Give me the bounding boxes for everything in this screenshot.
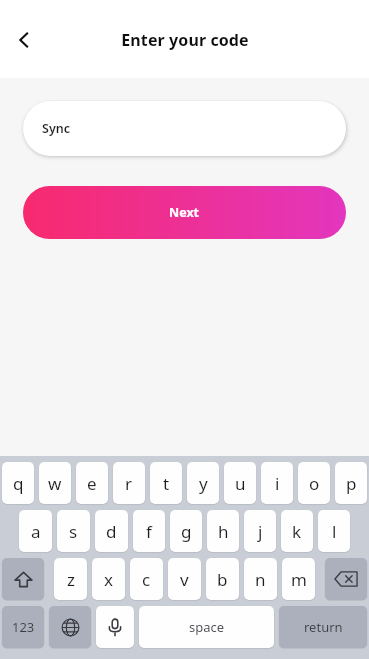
- staticText: h: [218, 520, 229, 543]
- button[interactable]: Shift: [2, 558, 44, 600]
- staticText: u: [235, 472, 246, 495]
- button[interactable]: e: [76, 462, 108, 504]
- button[interactable]: u: [224, 462, 256, 504]
- button[interactable]: Sync: [23, 101, 346, 156]
- staticText: Next: [169, 204, 200, 221]
- staticText: d: [106, 520, 117, 543]
- staticText: t: [163, 472, 170, 495]
- button[interactable]: m: [282, 558, 315, 600]
- button[interactable]: r: [113, 462, 145, 504]
- button[interactable]: b: [206, 558, 239, 600]
- button[interactable]: Voice input: [96, 606, 134, 648]
- button[interactable]: j: [244, 510, 276, 552]
- staticText: c: [142, 568, 151, 591]
- button[interactable]: t: [150, 462, 182, 504]
- button[interactable]: f: [133, 510, 165, 552]
- staticText: l: [332, 520, 337, 543]
- button[interactable]: i: [261, 462, 293, 504]
- button[interactable]: space: [139, 606, 274, 648]
- staticText: k: [292, 520, 302, 543]
- button[interactable]: Next: [23, 186, 346, 239]
- staticText: s: [69, 520, 78, 543]
- staticText: v: [180, 568, 189, 591]
- button[interactable]: y: [187, 462, 219, 504]
- staticText: Enter your code: [121, 29, 249, 51]
- staticText: 123: [12, 618, 35, 636]
- staticText: Sync: [42, 120, 70, 137]
- staticText: q: [13, 472, 24, 495]
- button[interactable]: z: [54, 558, 87, 600]
- button[interactable]: Back: [4, 20, 44, 60]
- button[interactable]: v: [168, 558, 201, 600]
- button[interactable]: w: [39, 462, 71, 504]
- button[interactable]: return: [279, 606, 367, 648]
- staticText: return: [304, 618, 343, 636]
- staticText: r: [125, 472, 133, 495]
- staticText: g: [181, 520, 192, 543]
- staticText: y: [199, 472, 208, 495]
- staticText: a: [31, 520, 41, 543]
- button[interactable]: s: [57, 510, 90, 552]
- button[interactable]: Change keyboard language: [49, 606, 91, 648]
- staticText: i: [275, 472, 280, 495]
- staticText: n: [255, 568, 266, 591]
- button[interactable]: c: [130, 558, 163, 600]
- button[interactable]: q: [2, 462, 34, 504]
- staticText: b: [217, 568, 228, 591]
- button[interactable]: p: [335, 462, 367, 504]
- button[interactable]: g: [170, 510, 202, 552]
- staticText: z: [67, 568, 75, 591]
- staticText: o: [309, 472, 320, 495]
- staticText: space: [189, 618, 225, 636]
- button[interactable]: k: [281, 510, 313, 552]
- staticText: w: [48, 472, 62, 495]
- button[interactable]: x: [92, 558, 125, 600]
- staticText: e: [87, 472, 97, 495]
- staticText: j: [258, 520, 263, 543]
- staticText: x: [104, 568, 113, 591]
- button[interactable]: a: [19, 510, 52, 552]
- button[interactable]: 123: [2, 606, 44, 648]
- staticText: m: [291, 568, 307, 591]
- button[interactable]: d: [95, 510, 128, 552]
- button[interactable]: n: [244, 558, 277, 600]
- button[interactable]: Backspace: [325, 558, 367, 600]
- button[interactable]: l: [318, 510, 350, 552]
- staticText: f: [146, 520, 152, 543]
- button[interactable]: h: [207, 510, 239, 552]
- button[interactable]: o: [298, 462, 330, 504]
- staticText: p: [346, 472, 357, 495]
